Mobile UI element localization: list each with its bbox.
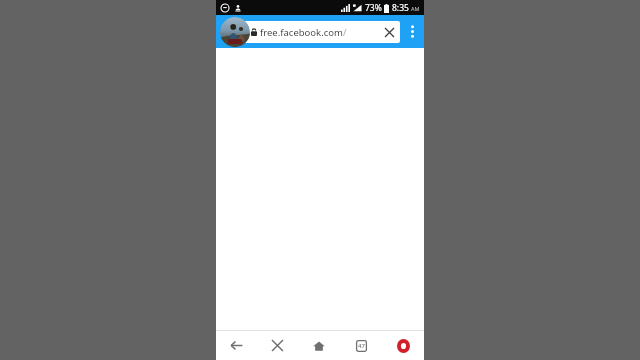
button[interactable]: Stop loading bbox=[378, 21, 400, 43]
staticText: 73% bbox=[365, 2, 382, 14]
button[interactable]: Tabs bbox=[340, 331, 382, 360]
button[interactable]: Back bbox=[216, 331, 257, 360]
staticText: 47 bbox=[358, 342, 365, 350]
staticText: 8:35 bbox=[392, 2, 409, 14]
button[interactable]: More options bbox=[400, 15, 424, 48]
button[interactable]: Profile bbox=[220, 17, 250, 47]
staticText: AM bbox=[411, 5, 420, 12]
staticText: /privacy/tou bbox=[343, 26, 378, 39]
button[interactable]: Opera menu bbox=[382, 331, 424, 360]
button[interactable]: Home bbox=[298, 331, 340, 360]
button[interactable]: Stop bbox=[257, 331, 298, 360]
button[interactable]: free.facebook.com bbox=[236, 21, 400, 43]
staticText: free.facebook.com bbox=[260, 26, 343, 39]
